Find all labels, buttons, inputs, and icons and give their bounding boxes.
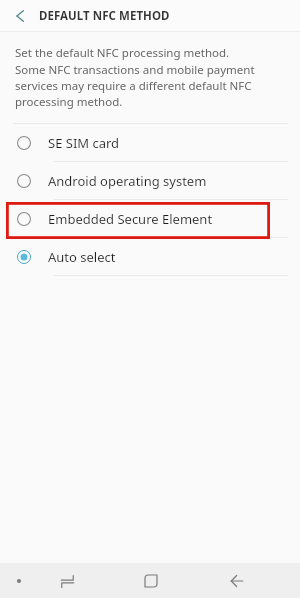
button[interactable]: Auto select — [0, 238, 300, 275]
staticText: DEFAULT NFC METHOD — [39, 8, 170, 24]
button[interactable]: SE SIM card — [0, 124, 300, 161]
staticText: Android operating system — [48, 172, 207, 190]
button[interactable]: Recent apps — [58, 572, 76, 590]
staticText: Embedded Secure Element — [48, 210, 213, 228]
button[interactable]: Android operating system — [0, 162, 300, 199]
staticText: SE SIM card — [48, 134, 120, 152]
button[interactable]: Navigate up — [0, 0, 39, 31]
button[interactable]: Menu — [10, 572, 28, 590]
button[interactable]: Embedded Secure Element — [0, 200, 300, 237]
button[interactable]: Home — [142, 572, 160, 590]
staticText: Set the default NFC processing method. S… — [15, 45, 255, 109]
staticText: Auto select — [48, 248, 116, 266]
button[interactable]: Back — [228, 572, 246, 590]
